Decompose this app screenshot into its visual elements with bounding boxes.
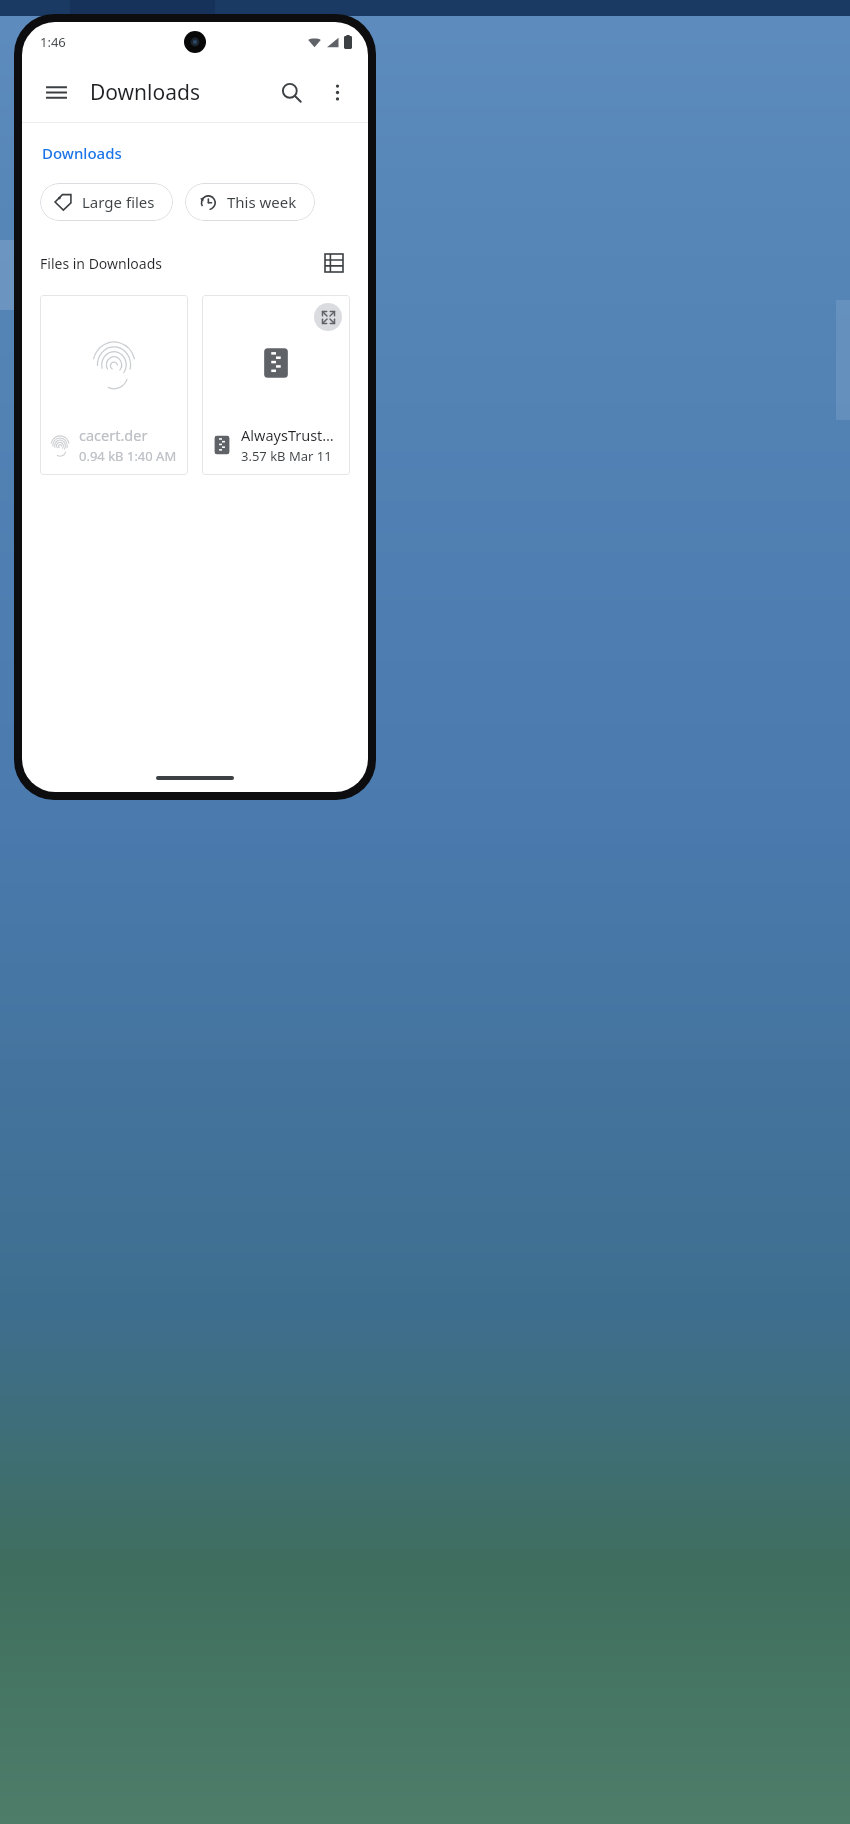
button[interactable]: Switch to list view (314, 243, 354, 283)
staticText: Files in Downloads (40, 254, 162, 273)
staticText: Downloads (42, 143, 122, 163)
button[interactable]: Downloads (40, 141, 124, 165)
staticText: 3.57 kB Mar 11 (241, 447, 332, 465)
staticText: Large files (82, 192, 155, 212)
button[interactable]: Preview file (314, 303, 342, 331)
button[interactable]: Search (268, 69, 314, 115)
staticText: 0.94 kB 1:40 AM (79, 447, 177, 465)
button[interactable]: Open navigation drawer (34, 70, 78, 114)
button[interactable]: Large files (40, 183, 173, 221)
staticText: This week (227, 192, 297, 212)
staticText: AlwaysTrustUser… (241, 425, 342, 445)
button[interactable]: This week (185, 183, 315, 221)
button[interactable]: cacert.der (40, 295, 188, 475)
button[interactable]: Preview file (202, 295, 350, 475)
staticText: cacert.der (79, 425, 148, 445)
staticText: Downloads (90, 78, 200, 107)
button[interactable]: More options (314, 69, 360, 115)
staticText: 1:46 (40, 33, 66, 51)
